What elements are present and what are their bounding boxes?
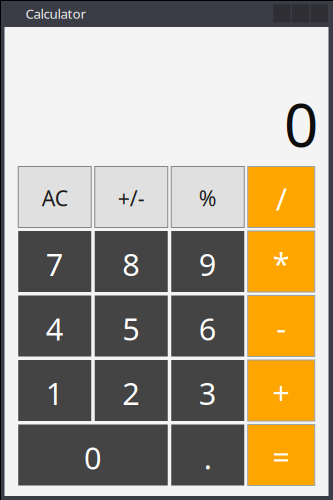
button[interactable]: AC — [18, 166, 91, 227]
button[interactable]: 5 — [95, 295, 168, 356]
staticText: 3 — [199, 373, 217, 413]
staticText: 0 — [84, 437, 102, 478]
button[interactable]: 8 — [95, 231, 168, 292]
button[interactable]: 0 — [18, 424, 168, 485]
button[interactable]: . — [171, 424, 244, 485]
staticText: 1 — [46, 373, 64, 413]
button[interactable]: Minimize — [273, 4, 291, 22]
button[interactable]: +/- — [95, 166, 168, 227]
staticText: % — [199, 184, 217, 212]
button[interactable]: + — [248, 360, 315, 421]
staticText: 2 — [122, 373, 140, 413]
button[interactable]: 2 — [95, 360, 168, 421]
staticText: AC — [42, 184, 68, 212]
staticText: . — [204, 437, 212, 478]
staticText: 4 — [46, 308, 64, 349]
button[interactable]: 9 — [171, 231, 244, 292]
staticText: - — [276, 307, 286, 348]
staticText: 8 — [122, 244, 140, 284]
staticText: 0 — [284, 84, 318, 163]
staticText: / — [276, 178, 287, 219]
staticText: Calculator — [25, 5, 86, 22]
button[interactable]: 3 — [171, 360, 244, 421]
button[interactable]: 1 — [18, 360, 91, 421]
button[interactable]: / — [248, 166, 315, 227]
button[interactable]: - — [248, 295, 315, 356]
staticText: + — [272, 372, 290, 412]
button[interactable]: % — [171, 166, 244, 227]
button[interactable]: = — [248, 424, 315, 485]
staticText: = — [272, 436, 290, 477]
staticText: +/- — [118, 184, 145, 212]
staticText: 9 — [199, 244, 217, 284]
button[interactable]: 4 — [18, 295, 91, 356]
button[interactable]: 7 — [18, 231, 91, 292]
staticText: * — [273, 243, 290, 283]
staticText: 5 — [122, 308, 140, 349]
button[interactable]: 6 — [171, 295, 244, 356]
staticText: 7 — [46, 244, 64, 284]
staticText: 6 — [199, 308, 217, 349]
button[interactable]: * — [248, 231, 315, 292]
